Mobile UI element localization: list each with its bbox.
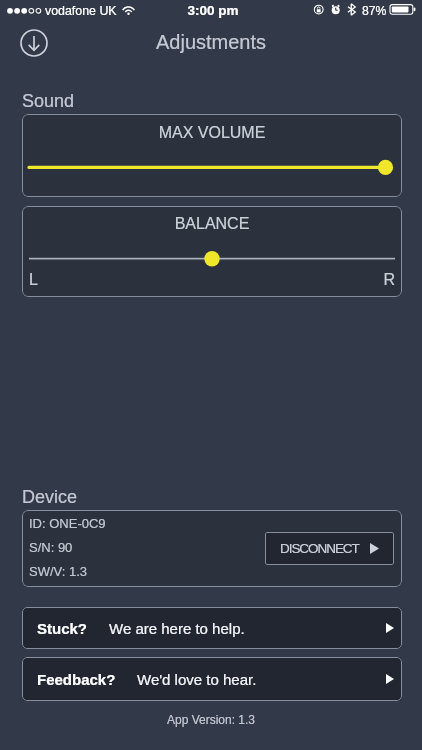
staticText: Feedback? bbox=[37, 671, 116, 688]
staticText: SW/V: 1.3 bbox=[29, 564, 88, 579]
staticText: ID: ONE-0C9 bbox=[29, 516, 106, 531]
button[interactable]: Balance slider bbox=[22, 244, 402, 274]
button[interactable]: Max volume slider bbox=[22, 152, 402, 182]
button[interactable]: Back bbox=[18, 27, 50, 59]
staticText: vodafone UK bbox=[45, 4, 117, 18]
staticText: MAX VOLUME bbox=[22, 124, 402, 142]
button[interactable]: Feedback? bbox=[22, 657, 402, 701]
staticText: S/N: 90 bbox=[29, 540, 73, 555]
staticText: 87% bbox=[362, 4, 387, 18]
button[interactable]: DISCONNECT bbox=[265, 532, 394, 565]
staticText: Adjustments bbox=[0, 31, 422, 53]
staticText: Stuck? bbox=[37, 620, 88, 637]
staticText: We are here to help. bbox=[109, 620, 245, 637]
staticText: L bbox=[29, 271, 38, 289]
staticText: Sound bbox=[22, 91, 75, 111]
staticText: App Version: 1.3 bbox=[0, 713, 422, 726]
staticText: DISCONNECT bbox=[280, 541, 359, 556]
staticText: R bbox=[22, 271, 395, 289]
staticText: 3:00 pm bbox=[2, 3, 422, 18]
staticText: We'd love to hear. bbox=[137, 671, 257, 688]
staticText: BALANCE bbox=[22, 215, 402, 233]
staticText: Device bbox=[22, 487, 78, 507]
button[interactable]: Stuck? bbox=[22, 607, 402, 649]
